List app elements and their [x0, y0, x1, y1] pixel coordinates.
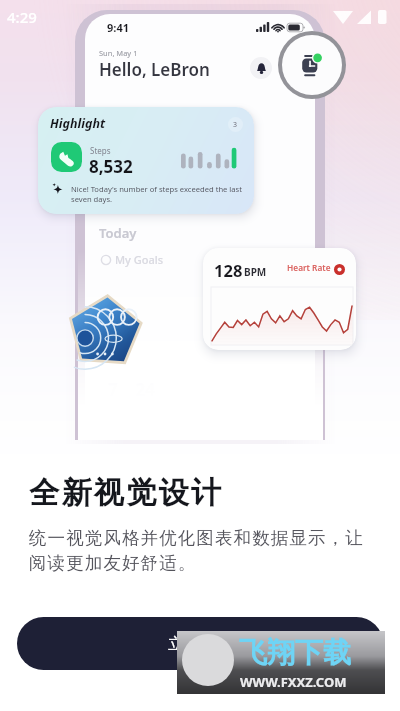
staticText: 9:41	[107, 20, 129, 35]
staticText: Heart Rate	[287, 262, 331, 273]
button[interactable]: 128	[203, 248, 356, 350]
staticText: 128	[214, 259, 243, 281]
staticText: Highlight	[50, 115, 106, 132]
staticText: Sun, May 1	[99, 48, 138, 58]
button[interactable]: Highlight	[38, 107, 254, 214]
button[interactable]: Watch	[282, 35, 342, 95]
staticText: Nice! Today's number of steps exceeded t…	[71, 184, 242, 204]
button[interactable]: Notifications	[250, 57, 272, 79]
staticText: Today	[99, 224, 137, 242]
staticText: 全新视觉设计	[29, 474, 224, 512]
staticText: Steps	[90, 145, 111, 156]
staticText: 8,532	[89, 155, 133, 178]
staticText: WWW.FXXZ.COM	[240, 673, 347, 691]
staticText: Hello, LeBron	[99, 58, 210, 81]
staticText: My Goals	[115, 252, 164, 267]
staticText: 立即下载	[168, 634, 232, 654]
staticText: 飞翔下载	[239, 635, 351, 670]
button[interactable]: 立即下载	[17, 617, 383, 670]
staticText: 统一视觉风格并优化图表和数据显示，让 阅读更加友好舒适。	[29, 527, 364, 574]
staticText: 3	[233, 120, 238, 130]
staticText: 4:29	[7, 7, 37, 27]
staticText: BPM	[244, 265, 267, 279]
